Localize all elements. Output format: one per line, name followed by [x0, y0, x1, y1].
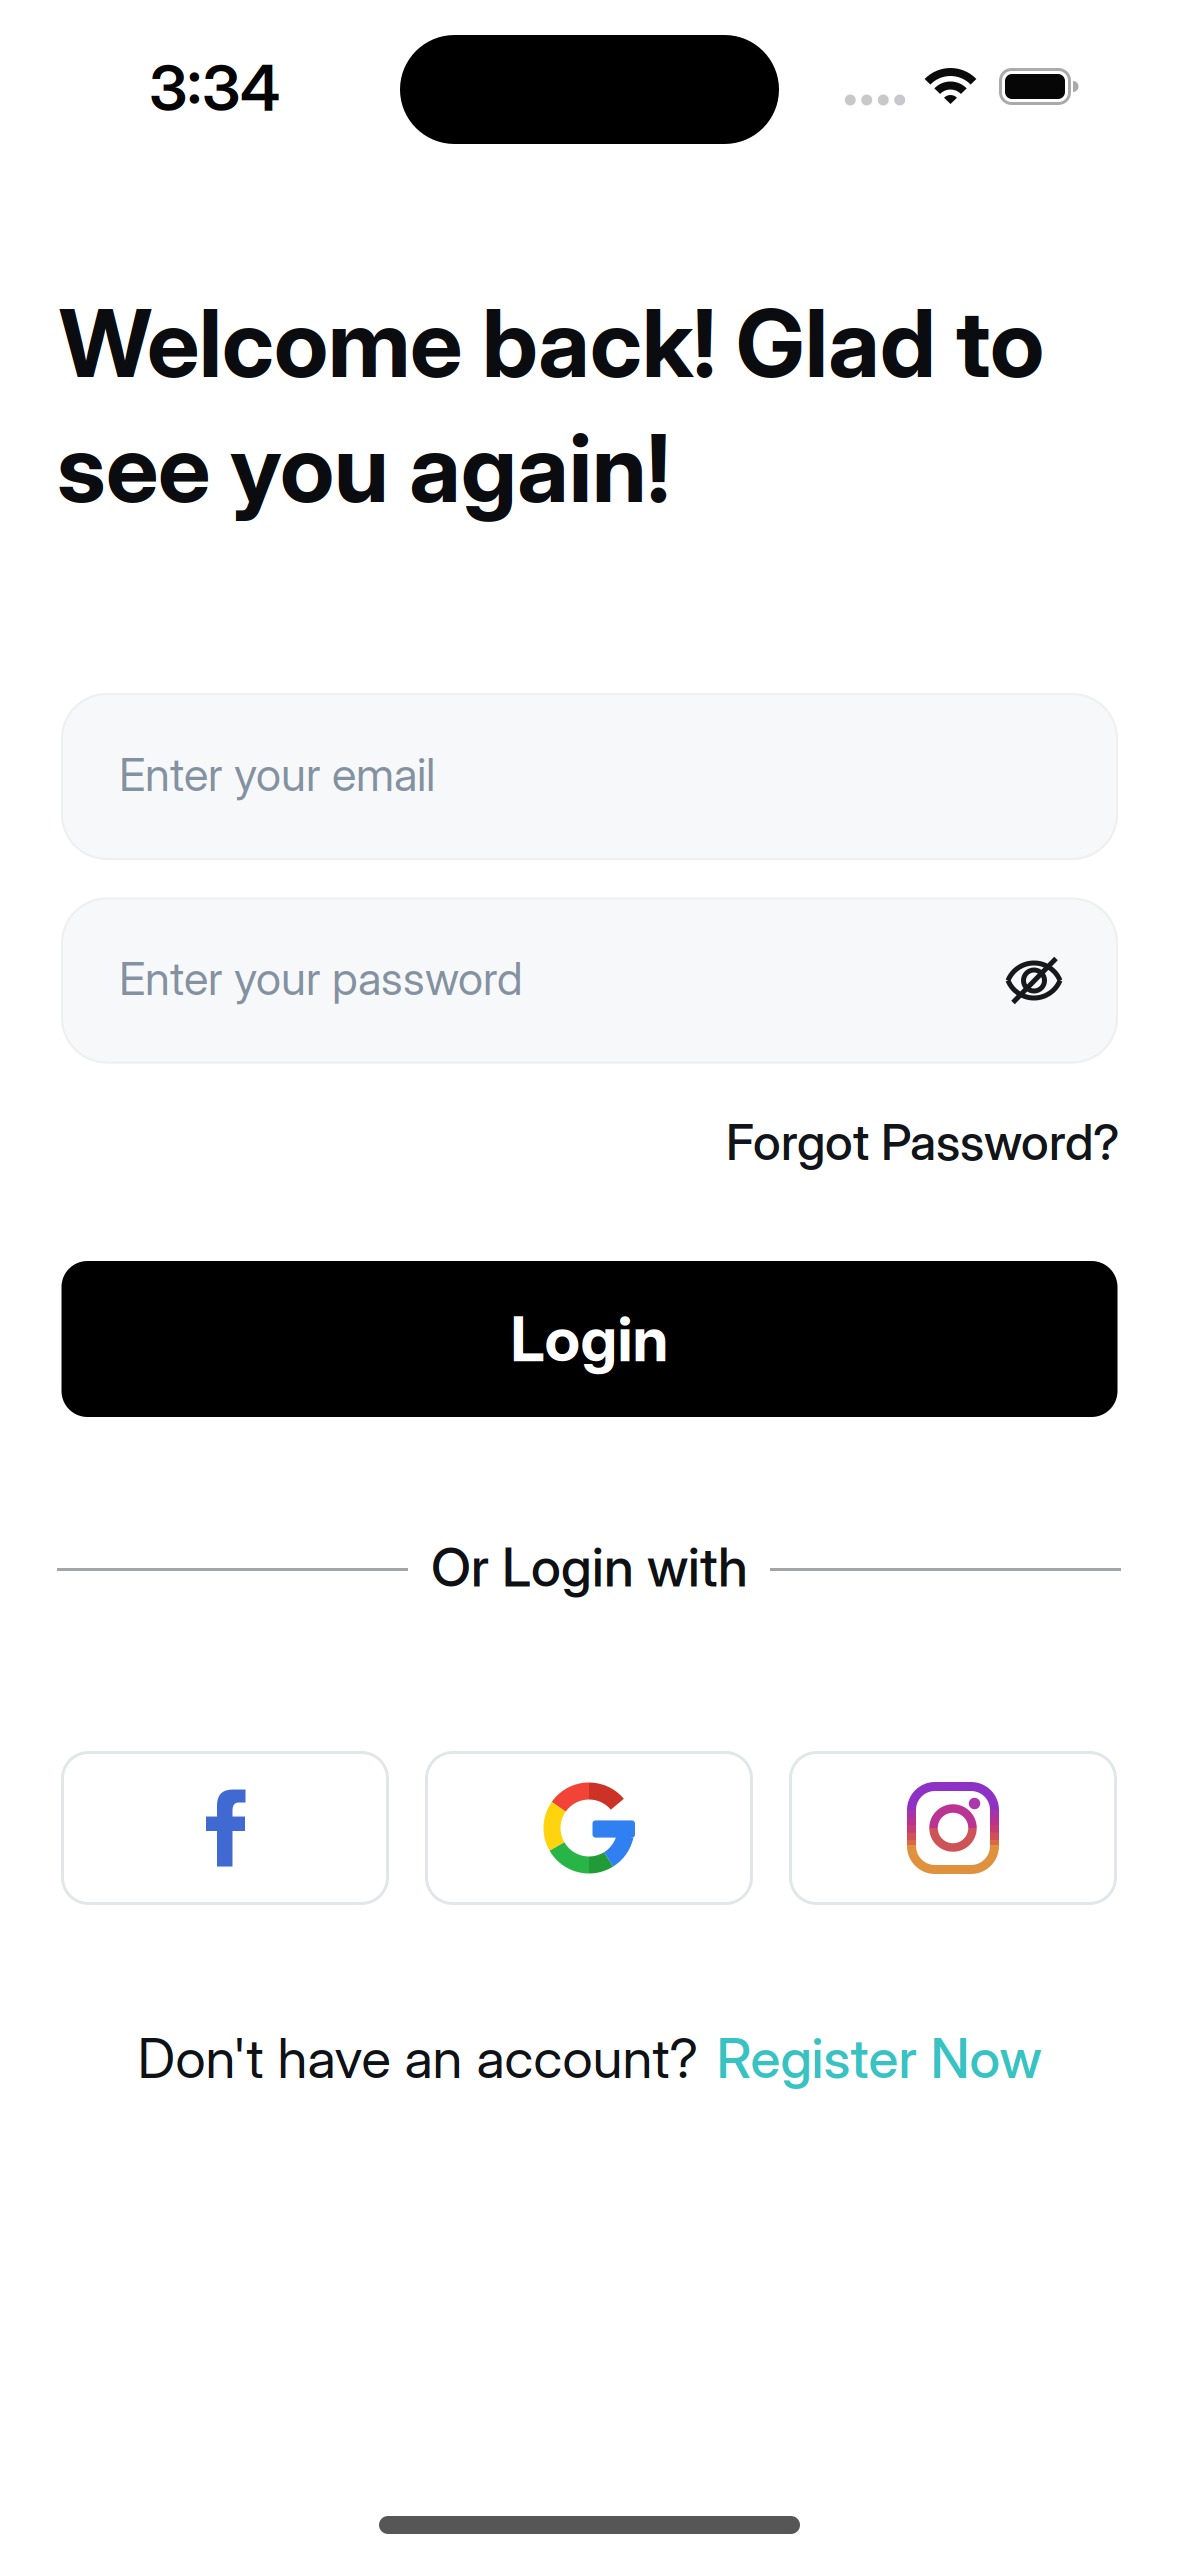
staticText: Enter your password	[119, 951, 523, 1006]
staticText: Forgot Password?	[726, 1112, 1120, 1172]
staticText: Login	[510, 1302, 668, 1376]
staticText: Don't have an account?	[137, 2025, 698, 2091]
button[interactable]: Login with Google	[425, 1751, 753, 1905]
staticText: Or Login with	[431, 1535, 748, 1599]
button[interactable]: Register Now	[716, 2025, 1041, 2091]
button[interactable]: Forgot Password?	[726, 1112, 1120, 1172]
staticText: Welcome back! Glad to	[59, 286, 1044, 399]
staticText: 3:34	[149, 50, 280, 126]
button[interactable]: Show password	[1006, 957, 1062, 1003]
button[interactable]: Login with Facebook	[61, 1751, 389, 1905]
staticText: Enter your email	[119, 747, 435, 802]
button[interactable]: Login	[61, 1261, 1117, 1417]
staticText: see you again!	[57, 411, 670, 524]
button[interactable]: Login with Instagram	[789, 1751, 1117, 1905]
staticText: Register Now	[716, 2025, 1041, 2091]
